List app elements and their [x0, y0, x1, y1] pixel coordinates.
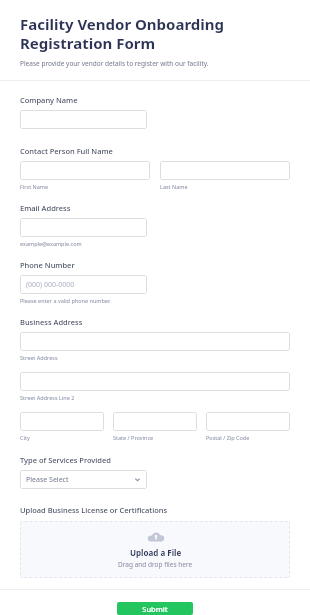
button[interactable]: (000) 000-0000 [20, 275, 147, 294]
button[interactable] [20, 412, 104, 431]
staticText: Company Name [20, 95, 78, 105]
staticText: Upload Business License or Certification… [20, 505, 168, 515]
staticText: Facility Vendor Onboarding Registration … [20, 14, 290, 53]
staticText: First Name [20, 183, 49, 190]
button[interactable] [20, 218, 147, 237]
staticText: Please enter a valid phone number. [20, 297, 111, 304]
button[interactable] [160, 161, 290, 180]
staticText: Submit [142, 604, 168, 614]
staticText: (000) 000-0000 [26, 280, 75, 290]
staticText: Drag and drop files here [118, 560, 193, 569]
button[interactable]: Upload a File [20, 521, 290, 578]
staticText: Postal / Zip Code [206, 434, 250, 441]
staticText: Contact Person Full Name [20, 146, 113, 156]
staticText: example@example.com [20, 240, 82, 247]
staticText: Please provide your vendor details to re… [20, 59, 209, 68]
staticText: Street Address [20, 354, 58, 361]
staticText: Email Address [20, 203, 71, 213]
button[interactable] [20, 372, 290, 391]
button[interactable] [206, 412, 290, 431]
staticText: Last Name [160, 183, 188, 190]
button[interactable]: Please Select [20, 470, 147, 489]
staticText: Type of Services Provided [20, 455, 111, 465]
button[interactable]: Submit [117, 602, 193, 615]
button[interactable] [20, 110, 147, 129]
staticText: Phone Number [20, 260, 75, 270]
button[interactable] [113, 412, 197, 431]
button[interactable] [20, 161, 150, 180]
staticText: Please Select [26, 475, 69, 485]
staticText: Upload a File [130, 547, 182, 558]
staticText: Street Address Line 2 [20, 394, 75, 401]
staticText: Business Address [20, 317, 83, 327]
button[interactable] [20, 332, 290, 351]
staticText: City [20, 434, 30, 441]
staticText: State / Province [113, 434, 154, 441]
